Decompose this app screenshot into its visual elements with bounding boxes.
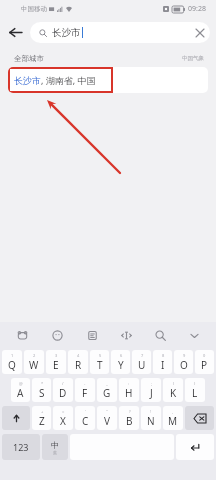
button[interactable]: 123 <box>2 434 40 460</box>
staticText: I <box>161 358 165 372</box>
staticText: Z <box>39 414 45 428</box>
staticText: 长沙市, 湖南省, 中国 <box>14 74 96 86</box>
staticText: Q <box>8 358 16 372</box>
button[interactable]: : <box>119 378 139 402</box>
staticText: K <box>170 386 177 400</box>
staticText: M <box>168 414 178 428</box>
staticText: 4 <box>77 353 80 358</box>
button[interactable]: Enter <box>176 434 214 460</box>
staticText: B <box>126 414 133 428</box>
staticText: _ <box>106 381 108 386</box>
button[interactable]: * <box>32 378 51 402</box>
button[interactable]: 7 <box>132 350 151 374</box>
staticText: C <box>82 414 89 428</box>
button[interactable]: _ <box>97 378 117 402</box>
staticText: S <box>39 386 45 400</box>
staticText: * <box>41 381 44 386</box>
staticText: 全部城市 <box>14 54 44 63</box>
staticText: 长沙市 <box>52 27 81 39</box>
staticText: = <box>62 409 65 414</box>
staticText: F <box>82 386 88 400</box>
staticText: E <box>53 358 59 372</box>
staticText: D <box>59 386 67 400</box>
button[interactable]: Clipboard <box>75 322 109 348</box>
button[interactable]: 长沙市, 湖南省, 中国 <box>8 67 208 93</box>
staticText: 8 <box>162 353 165 358</box>
staticText: 2 <box>33 353 36 358</box>
staticText: O <box>180 358 188 372</box>
button[interactable]: 5 <box>90 350 109 374</box>
staticText: " <box>106 409 108 414</box>
button[interactable]: / <box>53 378 73 402</box>
staticText: T <box>97 358 103 372</box>
staticText: , <box>172 409 174 414</box>
staticText: L <box>192 386 198 400</box>
button[interactable]: ' <box>75 406 95 430</box>
staticText: 中 <box>51 440 59 450</box>
staticText: 5 <box>99 353 102 358</box>
button[interactable]: ! <box>141 406 161 430</box>
button[interactable]: Shift <box>2 406 30 430</box>
button[interactable]: Move cursor <box>109 322 143 348</box>
staticText: / <box>62 381 64 386</box>
button[interactable]: ? <box>119 406 139 430</box>
staticText: ( <box>173 381 175 386</box>
staticText: 123 <box>13 441 29 453</box>
staticText: : <box>128 381 130 386</box>
button[interactable]: 9 <box>174 350 193 374</box>
button[interactable]: Backspace <box>185 406 214 430</box>
button[interactable]: - <box>75 378 95 402</box>
button[interactable]: 中 <box>42 434 68 460</box>
staticText: 中国移动 <box>21 5 47 13</box>
button[interactable]: 2 <box>24 350 44 374</box>
staticText: W <box>29 358 39 372</box>
staticText: + <box>41 409 44 414</box>
staticText: 中国气象 <box>182 55 204 62</box>
button[interactable]: 3 <box>46 350 66 374</box>
button[interactable]: Sticker <box>5 322 40 348</box>
staticText: ! <box>150 409 152 414</box>
staticText: V <box>104 414 110 428</box>
button[interactable]: = <box>53 406 73 430</box>
button[interactable]: " <box>97 406 117 430</box>
staticText: ' <box>85 409 86 414</box>
staticText: ? <box>129 409 131 414</box>
staticText: X <box>60 414 66 428</box>
button[interactable]: Collapse keyboard <box>177 322 211 348</box>
button[interactable]: 4 <box>68 350 88 374</box>
staticText: R <box>75 358 82 372</box>
staticText: 7 <box>141 353 144 358</box>
staticText: H <box>125 386 133 400</box>
staticText: A <box>17 386 24 400</box>
button[interactable]: @ <box>11 378 30 402</box>
staticText: - <box>84 381 86 386</box>
staticText: J <box>150 386 153 400</box>
staticText: 3 <box>55 353 58 358</box>
staticText: 6 <box>120 353 123 358</box>
button[interactable]: ( <box>163 378 183 402</box>
button[interactable]: Search <box>143 322 177 348</box>
staticText: G <box>103 386 111 400</box>
button[interactable]: 8 <box>153 350 172 374</box>
staticText: 0 <box>203 353 206 358</box>
button[interactable]: + <box>32 406 51 430</box>
button[interactable]: , <box>163 406 183 430</box>
staticText: 9 <box>183 353 186 358</box>
staticText: 09:28 <box>188 4 206 14</box>
staticText: ) <box>194 381 196 386</box>
button[interactable]: Clear <box>190 23 210 43</box>
button[interactable]: 0 <box>195 350 214 374</box>
button[interactable]: 1 <box>2 350 22 374</box>
button[interactable]: 6 <box>111 350 130 374</box>
button[interactable]: Emoji <box>40 322 75 348</box>
staticText: Y <box>118 358 124 372</box>
staticText: @ <box>19 381 23 386</box>
button[interactable]: 长沙市 <box>30 22 210 43</box>
staticText: 英 <box>53 450 57 455</box>
button[interactable]: ; <box>141 378 161 402</box>
staticText: ; <box>151 381 153 386</box>
button[interactable]: Back <box>0 17 30 47</box>
staticText: P <box>201 358 208 372</box>
button[interactable]: ) <box>185 378 205 402</box>
